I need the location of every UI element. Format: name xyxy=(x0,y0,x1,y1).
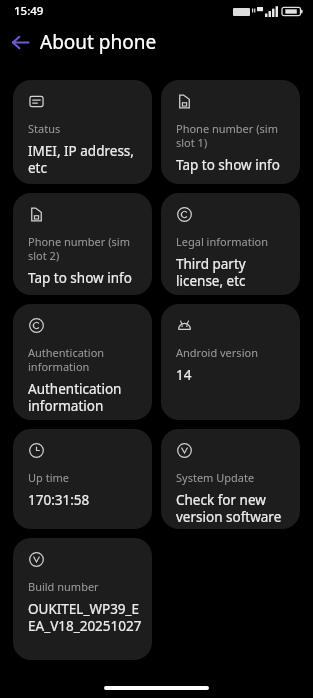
staticText: Tap to show info xyxy=(28,269,132,287)
button[interactable]: System Update xyxy=(161,429,300,529)
button[interactable]: Back xyxy=(0,22,40,62)
button[interactable]: Authentication information xyxy=(13,304,152,420)
button[interactable]: Up time xyxy=(13,429,152,529)
staticText: Build number xyxy=(28,579,99,594)
button[interactable]: Legal information xyxy=(161,193,300,295)
staticText: System Update xyxy=(176,470,255,485)
staticText: Status xyxy=(28,121,61,136)
staticText: Android version xyxy=(176,345,258,360)
staticText: Phone number (sim slot 1) xyxy=(176,121,290,150)
staticText: Tap to show info xyxy=(176,156,280,174)
staticText: 170:31:58 xyxy=(28,491,90,509)
staticText: 14 xyxy=(176,366,192,384)
staticText: Check for new version software xyxy=(176,491,290,526)
button[interactable]: Android version xyxy=(161,304,300,420)
staticText: Legal information xyxy=(176,234,268,249)
staticText: 15:49 xyxy=(14,3,44,19)
staticText: About phone xyxy=(40,29,157,55)
staticText: Up time xyxy=(28,470,69,485)
staticText: Phone number (sim slot 2) xyxy=(28,234,142,263)
staticText: Authentication information xyxy=(28,380,142,415)
staticText: Third party license, etc xyxy=(176,255,290,290)
button[interactable]: Phone number (sim slot 1) xyxy=(161,80,300,184)
staticText: OUKITEL_WP39_EEA_V18_20251027 xyxy=(28,600,142,635)
button[interactable]: Status xyxy=(13,80,152,184)
button[interactable]: Build number xyxy=(13,538,152,660)
staticText: Authentication information xyxy=(28,345,142,374)
staticText: IMEI, IP address, etc xyxy=(28,142,142,177)
button[interactable]: Phone number (sim slot 2) xyxy=(13,193,152,295)
